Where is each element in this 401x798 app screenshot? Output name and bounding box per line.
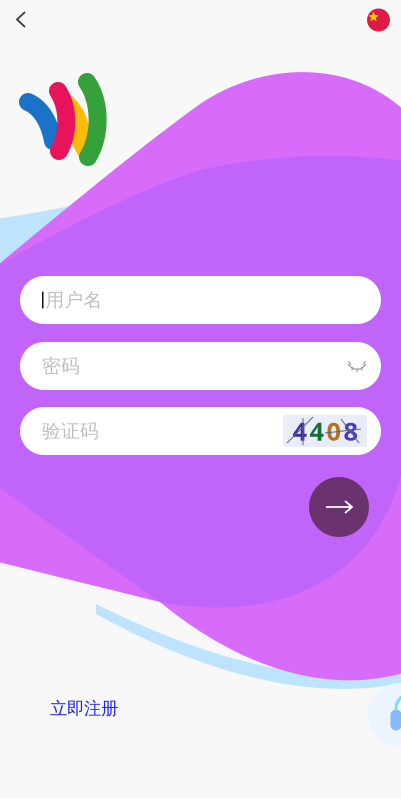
staticText: 4 [309,414,323,448]
staticText: 4 [292,414,306,448]
button[interactable]: 立即注册 [50,692,118,725]
staticText: 8 [343,414,357,448]
staticText: 立即注册 [50,698,118,719]
button[interactable]: Sign in [309,477,369,537]
staticText: 验证码 [42,419,99,442]
staticText: 0 [326,414,340,448]
button[interactable]: Back [0,0,43,40]
staticText: 密码 [42,354,80,377]
button[interactable]: Language [356,0,401,40]
staticText: 用户名 [45,288,102,311]
button[interactable]: Support [368,683,401,747]
